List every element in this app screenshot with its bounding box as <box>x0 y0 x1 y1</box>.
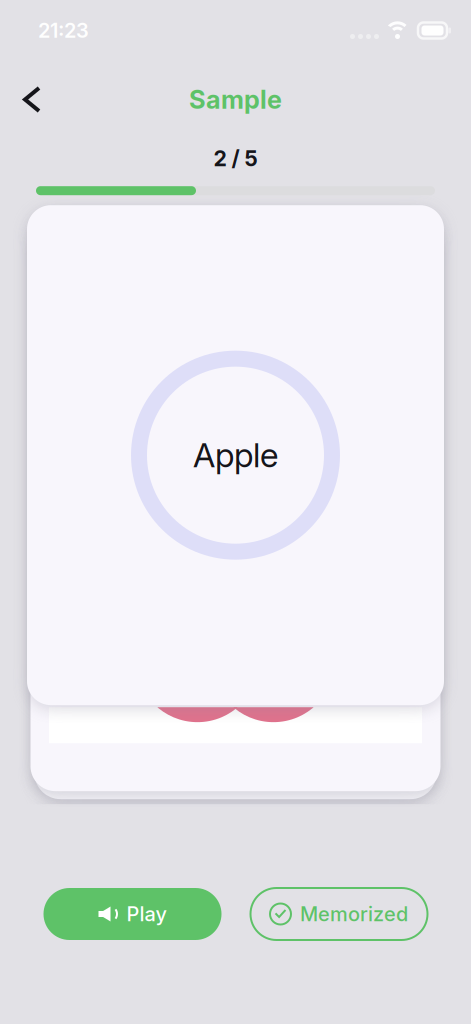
staticText: 21:23 <box>38 19 89 42</box>
button[interactable]: Play <box>43 888 221 940</box>
staticText: Memorized <box>300 902 408 926</box>
staticText: Play <box>126 902 166 926</box>
button[interactable]: Back <box>0 75 56 124</box>
staticText: Apple <box>193 435 278 475</box>
button[interactable]: Memorized <box>250 888 427 940</box>
staticText: 2 / 5 <box>213 146 257 171</box>
staticText: Sample <box>189 85 282 114</box>
